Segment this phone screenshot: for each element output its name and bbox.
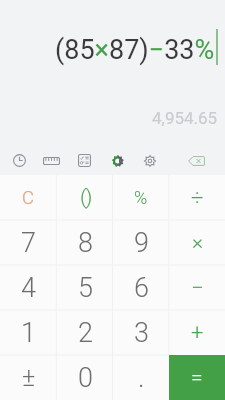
button[interactable]: ÷ bbox=[169, 175, 225, 220]
button[interactable]: Backspace bbox=[188, 146, 218, 175]
staticText: 0 bbox=[78, 362, 93, 394]
staticText: . bbox=[138, 362, 145, 394]
staticText: ÷ bbox=[191, 185, 204, 211]
staticText: C bbox=[22, 187, 35, 209]
staticText: 7 bbox=[21, 227, 36, 259]
staticText: 4 bbox=[21, 272, 36, 304]
button[interactable]: 2 bbox=[57, 310, 113, 355]
button[interactable]: C bbox=[0, 175, 57, 220]
button[interactable]: 3 bbox=[113, 310, 169, 355]
button[interactable]: Settings bbox=[144, 146, 174, 175]
staticText: ± bbox=[22, 363, 36, 392]
button[interactable]: = bbox=[169, 355, 225, 400]
staticText: − bbox=[191, 275, 204, 301]
button[interactable]: History bbox=[13, 146, 43, 175]
button[interactable]: . bbox=[113, 355, 169, 400]
button[interactable]: × bbox=[169, 220, 225, 265]
button[interactable]: + bbox=[169, 310, 225, 355]
button[interactable]: 1 bbox=[0, 310, 57, 355]
button[interactable]: () bbox=[57, 175, 113, 220]
button[interactable]: ± bbox=[0, 355, 57, 400]
staticText: (85×87)−33% bbox=[55, 34, 215, 66]
button[interactable]: Scientific bbox=[78, 146, 108, 175]
button[interactable]: 0 bbox=[57, 355, 113, 400]
button[interactable]: − bbox=[169, 265, 225, 310]
staticText: = bbox=[191, 365, 203, 390]
staticText: 9 bbox=[134, 227, 149, 259]
staticText: % bbox=[134, 187, 148, 208]
button[interactable]: 4 bbox=[0, 265, 57, 310]
button[interactable]: 6 bbox=[113, 265, 169, 310]
staticText: 2 bbox=[78, 317, 93, 349]
button[interactable]: % bbox=[113, 175, 169, 220]
staticText: 4,954.65 bbox=[152, 108, 218, 128]
button[interactable]: 5 bbox=[57, 265, 113, 310]
staticText: × bbox=[192, 230, 203, 255]
staticText: 6 bbox=[134, 272, 149, 304]
button[interactable]: 7 bbox=[0, 220, 57, 265]
button[interactable]: 9 bbox=[113, 220, 169, 265]
button[interactable]: Converter bbox=[43, 146, 73, 175]
staticText: 1 bbox=[21, 317, 36, 349]
staticText: () bbox=[80, 185, 91, 210]
button[interactable]: Theme bbox=[112, 146, 142, 175]
staticText: 8 bbox=[78, 227, 93, 259]
staticText: 3 bbox=[134, 317, 149, 349]
staticText: 5 bbox=[78, 272, 93, 304]
button[interactable]: 8 bbox=[57, 220, 113, 265]
staticText: + bbox=[191, 320, 204, 346]
